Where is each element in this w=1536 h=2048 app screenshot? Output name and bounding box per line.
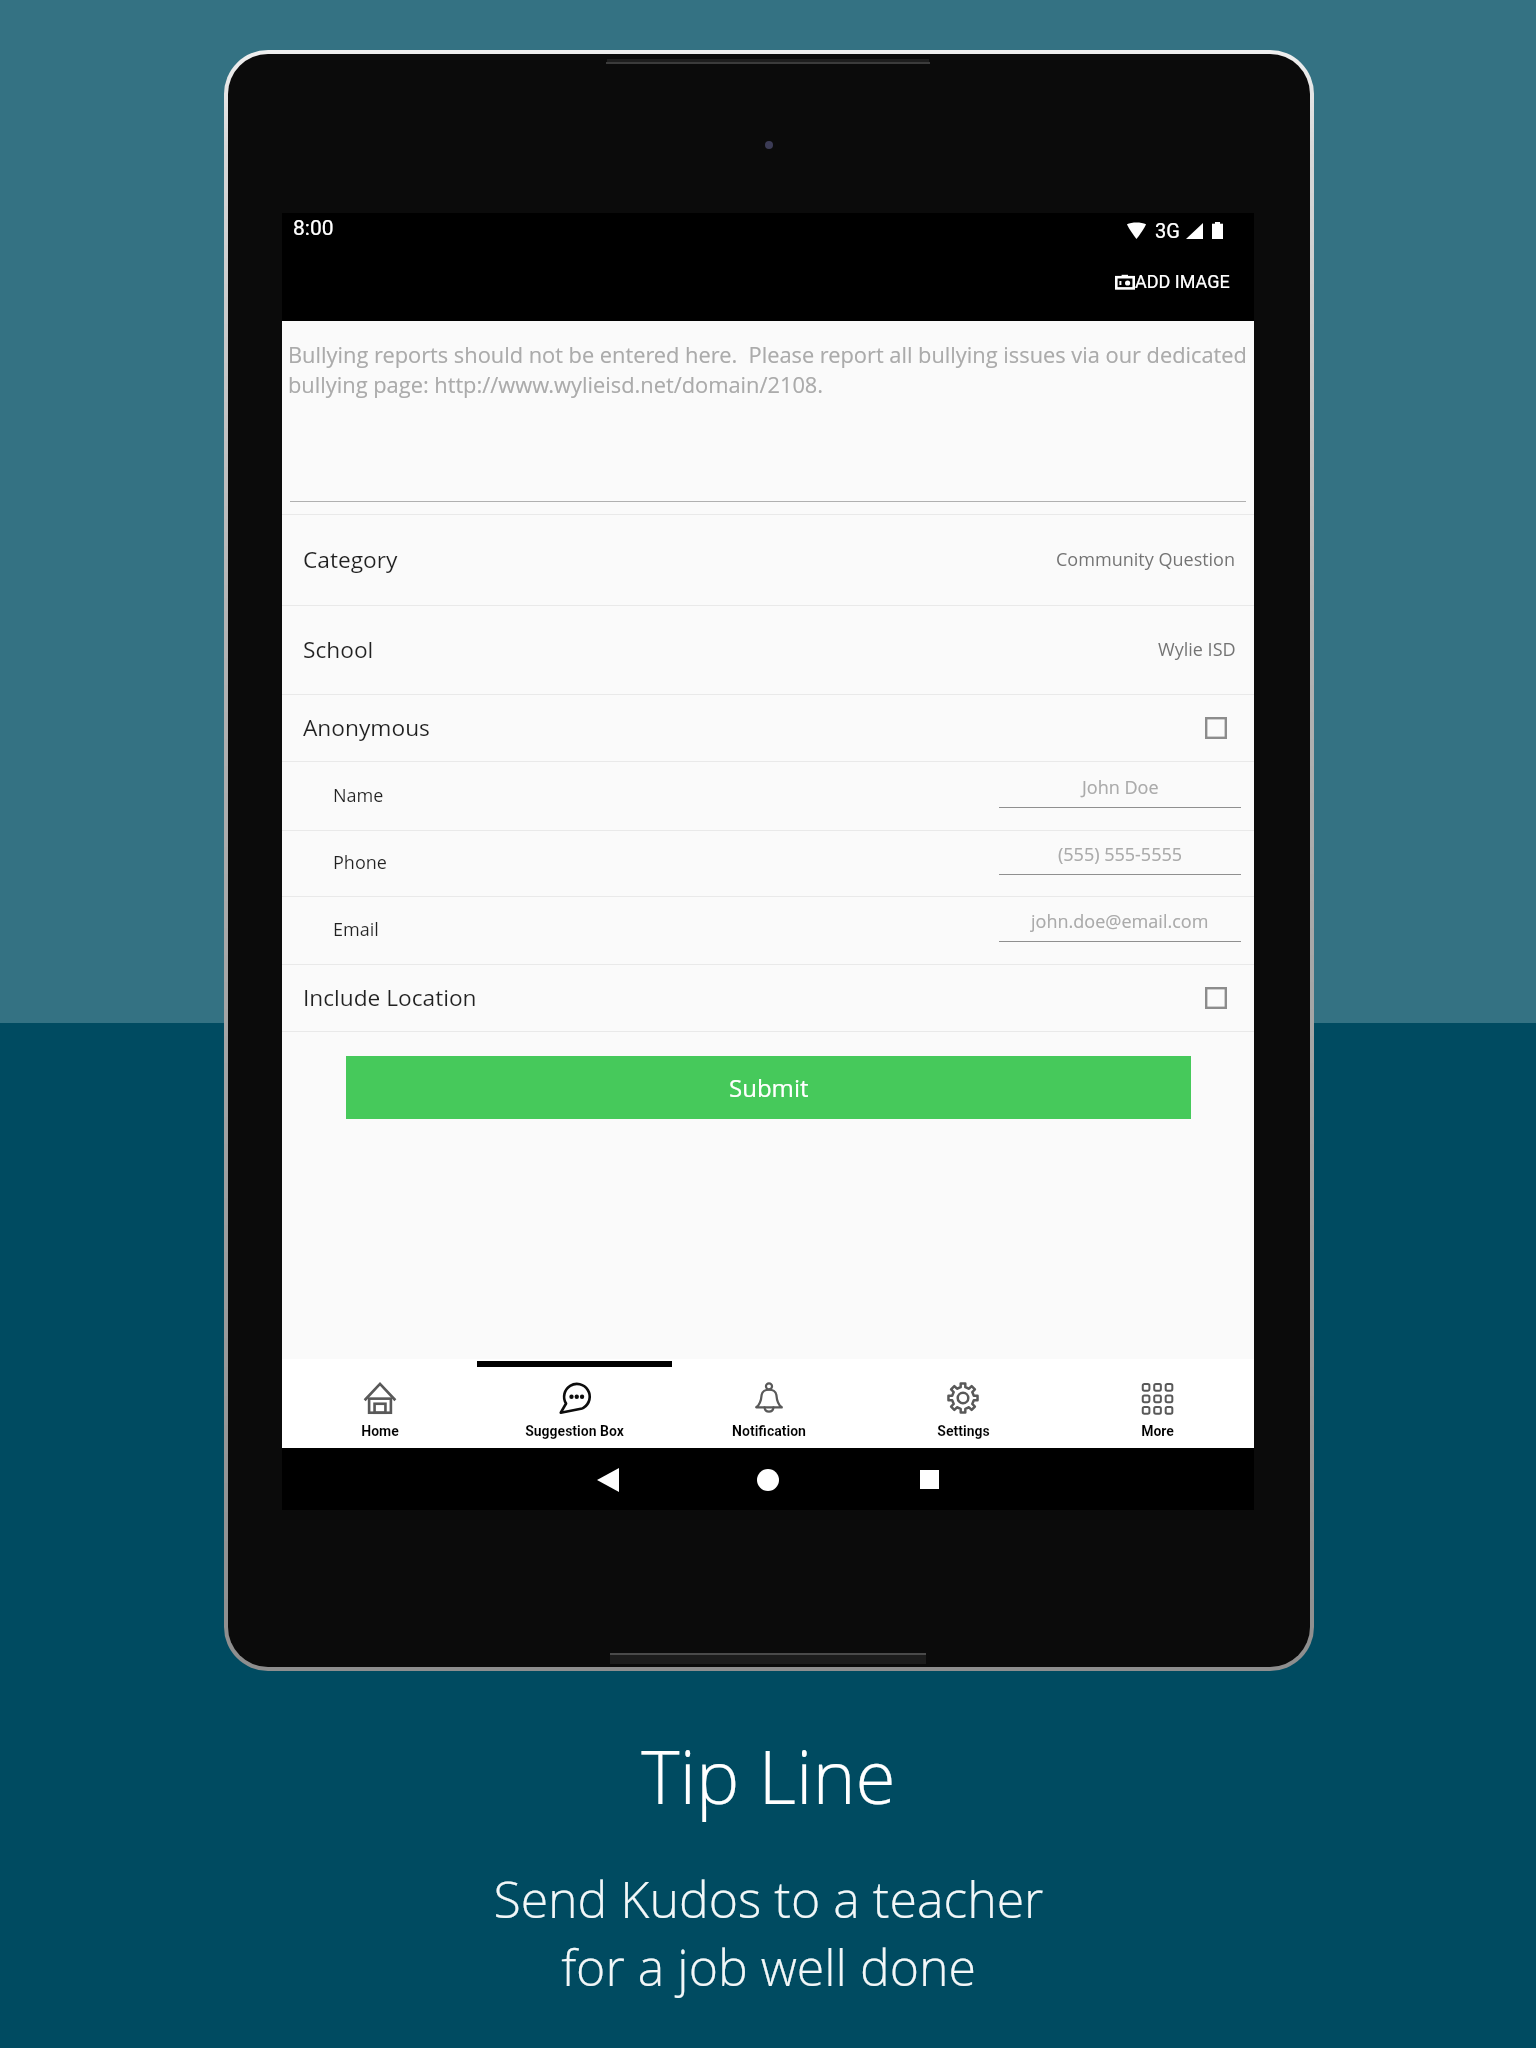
button[interactable]: School xyxy=(282,605,1254,693)
staticText: More xyxy=(1141,1423,1174,1439)
staticText: Name xyxy=(333,783,384,808)
staticText: John Doe xyxy=(1082,775,1159,800)
staticText: ADD IMAGE xyxy=(1135,271,1230,292)
staticText: Submit xyxy=(729,1071,809,1104)
button[interactable]: More xyxy=(1060,1359,1254,1448)
button[interactable]: Notification xyxy=(672,1359,866,1448)
staticText: Tip Line xyxy=(641,1726,896,1825)
staticText: 3G xyxy=(1155,219,1180,242)
button[interactable]: Add image xyxy=(1111,267,1234,296)
button[interactable]: Settings xyxy=(866,1359,1060,1448)
staticText: Settings xyxy=(937,1423,990,1439)
button[interactable]: Include Location xyxy=(282,964,1254,1030)
button[interactable]: Name xyxy=(282,761,1254,829)
staticText: (555) 555-5555 xyxy=(1058,842,1183,867)
staticText: Home xyxy=(361,1423,399,1439)
button[interactable]: Phone xyxy=(282,830,1254,895)
staticText: Phone xyxy=(333,850,387,875)
button[interactable]: Email xyxy=(282,896,1254,963)
staticText: Category xyxy=(303,544,398,575)
staticText: Send Kudos to a teacher for a job well d… xyxy=(493,1865,1044,2001)
staticText: Bullying reports should not be entered h… xyxy=(288,340,1260,399)
button[interactable]: Anonymous xyxy=(282,694,1254,760)
button[interactable]: Suggestion Box xyxy=(477,1359,672,1448)
staticText: Email xyxy=(333,917,379,942)
other: Home xyxy=(757,1469,779,1491)
staticText: Include Location xyxy=(303,982,477,1013)
button[interactable]: Home xyxy=(282,1359,477,1448)
staticText: Community Question xyxy=(1056,547,1236,572)
staticText: 8:00 xyxy=(293,216,334,241)
staticText: Wylie ISD xyxy=(1158,637,1236,662)
staticText: Suggestion Box xyxy=(525,1423,624,1439)
staticText: Anonymous xyxy=(303,712,430,743)
staticText: Notification xyxy=(732,1423,806,1439)
button[interactable]: Category xyxy=(282,514,1254,604)
staticText: john.doe@email.com xyxy=(1031,909,1209,934)
other: Back xyxy=(597,1468,619,1492)
button[interactable]: Submit xyxy=(346,1056,1191,1119)
staticText: School xyxy=(303,634,374,665)
